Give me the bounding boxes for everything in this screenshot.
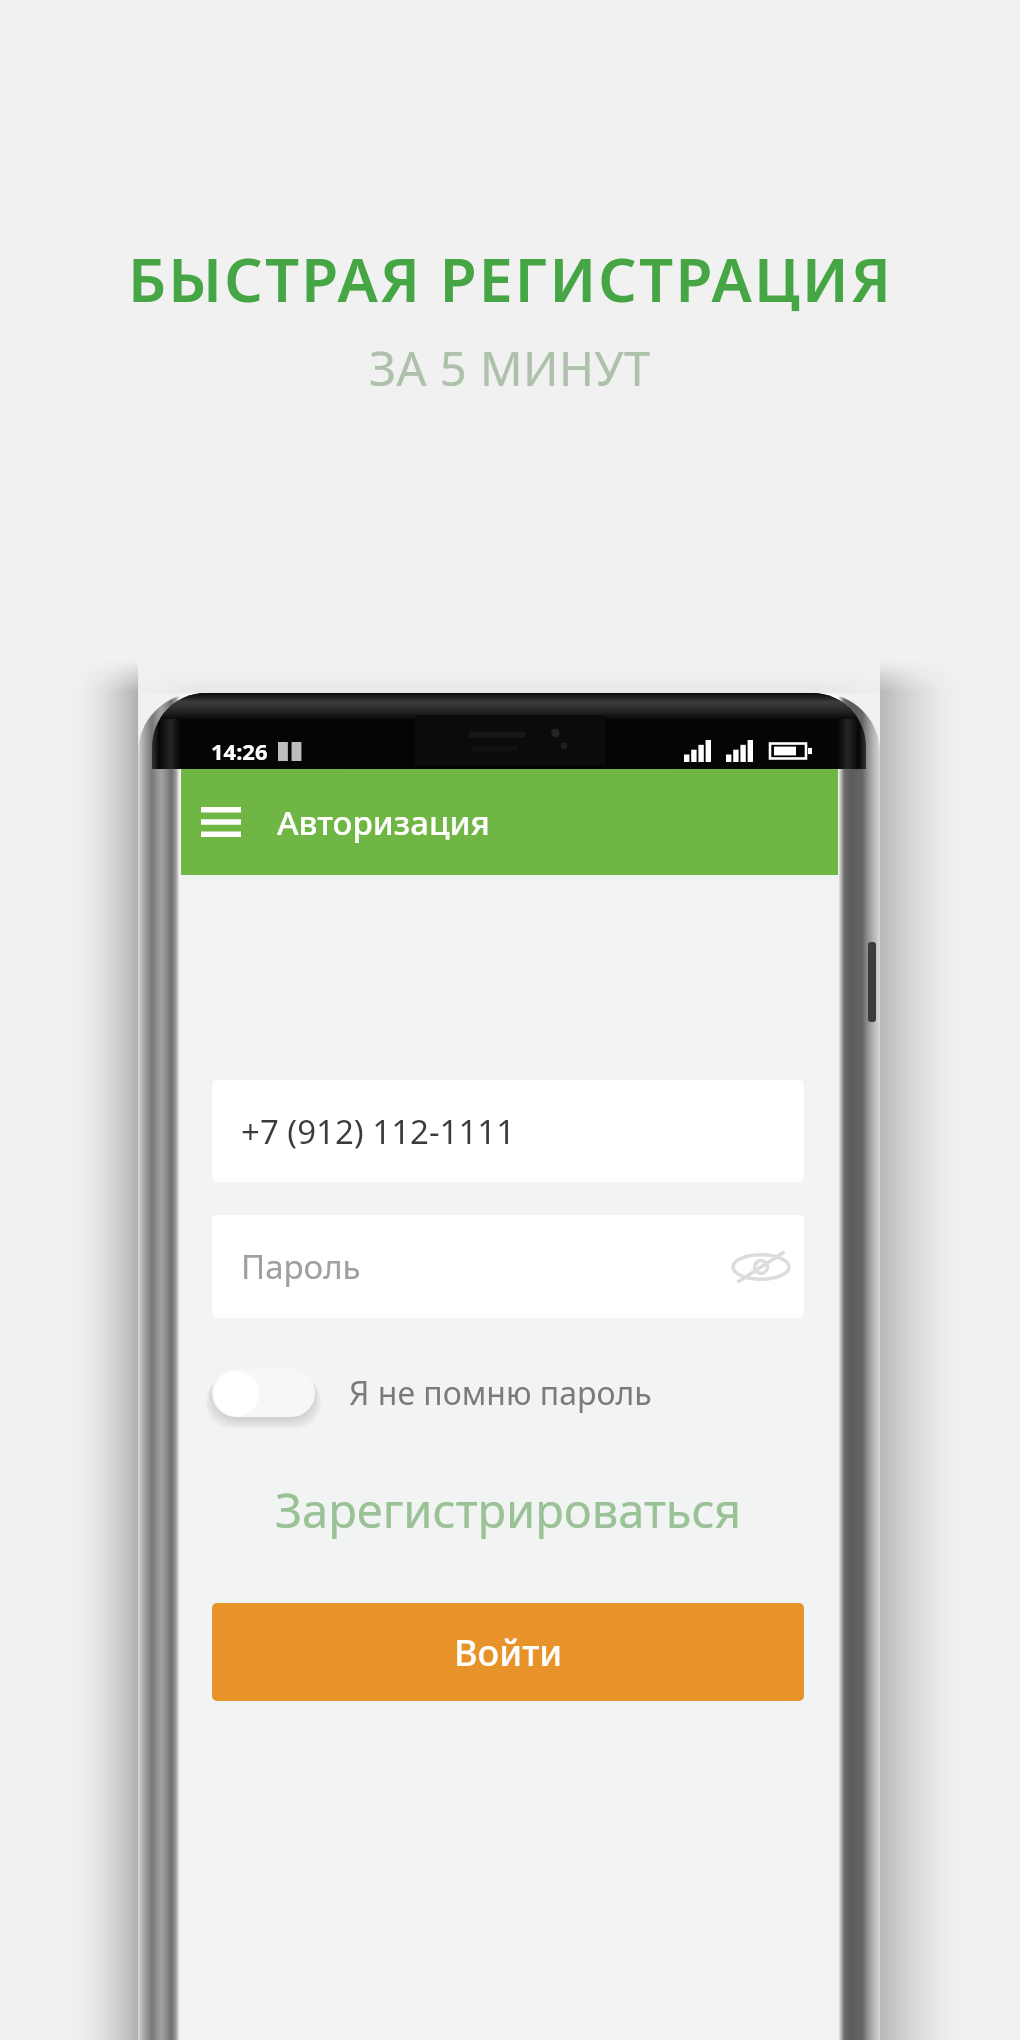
button[interactable]: Войти — [212, 1603, 804, 1701]
button[interactable]: Power button — [868, 942, 876, 1022]
staticText: Авторизация — [277, 800, 490, 845]
button[interactable]: +7 (912) 112-1111 — [212, 1080, 804, 1182]
staticText: Я не помню пароль — [349, 1371, 652, 1415]
staticText: 14:26 — [211, 736, 268, 766]
staticText: Пароль — [241, 1244, 361, 1289]
button[interactable]: Зарегистрироваться — [212, 1478, 804, 1542]
staticText: Зарегистрироваться — [275, 1478, 742, 1542]
staticText: +7 (912) 112-1111 — [241, 1109, 516, 1154]
button[interactable]: Пароль — [212, 1215, 804, 1318]
button[interactable]: Я не помню пароль — [212, 1368, 652, 1418]
button[interactable]: Open navigation menu — [195, 796, 247, 848]
staticText: БЫСТРАЯ РЕГИСТРАЦИЯ — [128, 238, 893, 320]
staticText: ЗА 5 МИНУТ — [369, 336, 651, 400]
staticText: Войти — [454, 1628, 563, 1677]
button[interactable]: Show password — [731, 1237, 791, 1297]
